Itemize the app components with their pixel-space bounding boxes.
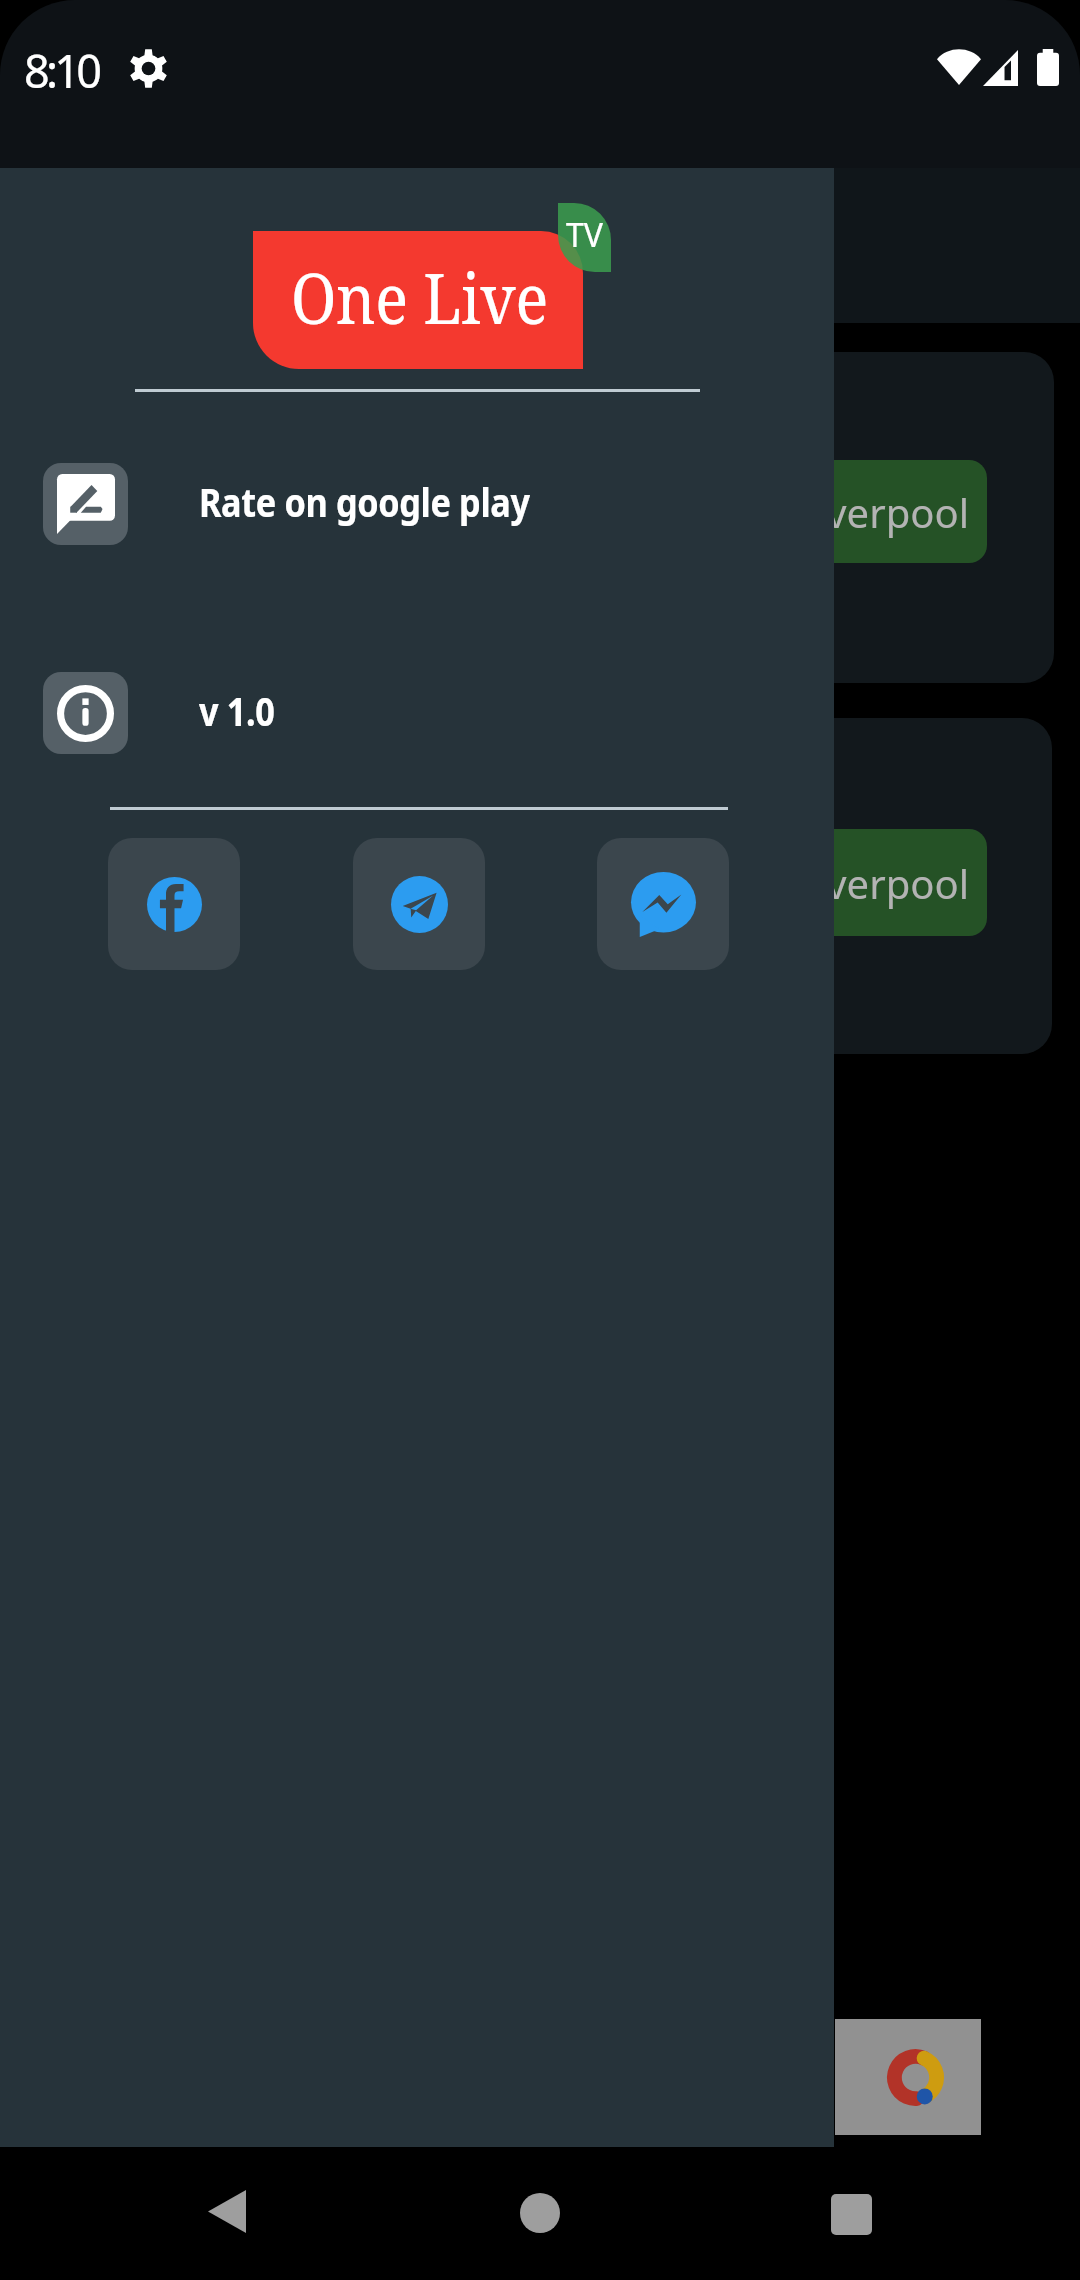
staticText: Liverpool: [795, 485, 969, 539]
button[interactable]: Rate on google play: [0, 463, 834, 545]
button[interactable]: Messenger: [597, 838, 729, 970]
staticText: Rate on google play: [199, 475, 530, 528]
staticText: 8:10: [24, 40, 99, 101]
staticText: v 1.0: [199, 684, 274, 737]
staticText: Liverpool: [795, 856, 969, 910]
button[interactable]: v 1.0: [0, 672, 834, 754]
staticText: TV: [566, 213, 603, 257]
button[interactable]: Telegram: [353, 838, 485, 970]
staticText: One Live: [291, 249, 548, 344]
button[interactable]: Home: [480, 2153, 600, 2273]
button[interactable]: Facebook: [108, 838, 240, 970]
button[interactable]: Back: [166, 2151, 286, 2271]
button[interactable]: Recent apps: [791, 2154, 911, 2274]
